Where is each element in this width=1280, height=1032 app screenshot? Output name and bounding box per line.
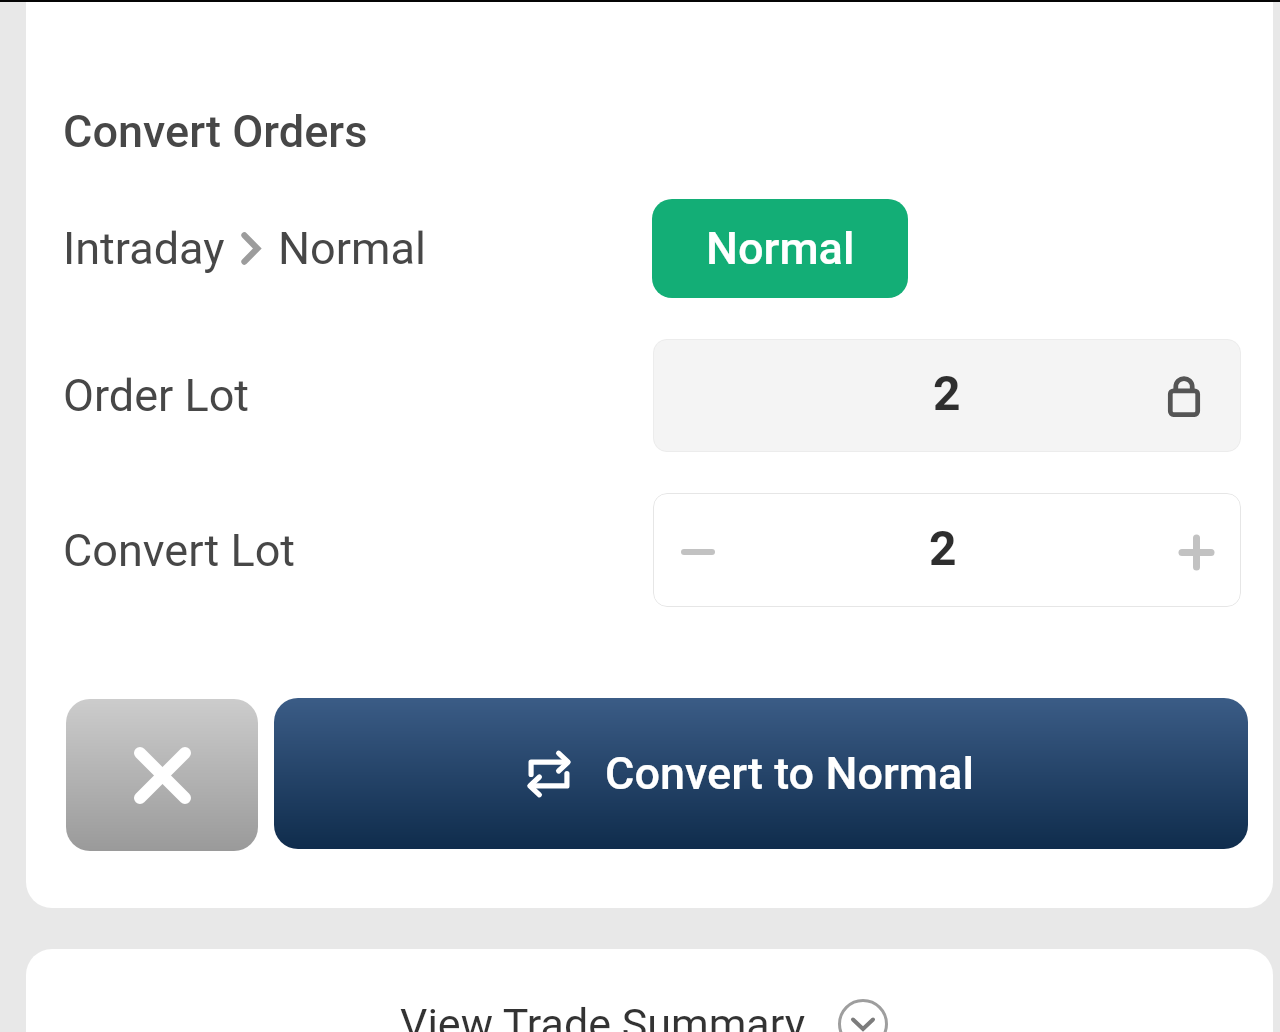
staticText: 2 bbox=[933, 365, 961, 421]
staticText: View Trade Summary bbox=[400, 999, 806, 1032]
staticText: Convert Lot bbox=[63, 524, 296, 577]
staticText: Intraday bbox=[63, 222, 225, 275]
staticText: Order Lot bbox=[63, 369, 250, 422]
button[interactable]: Convert to Normal bbox=[274, 698, 1248, 849]
staticText: Convert Orders bbox=[63, 105, 368, 158]
button[interactable]: View Trade Summary bbox=[26, 949, 1273, 1032]
staticText: Normal bbox=[706, 222, 855, 275]
staticText: Convert to Normal bbox=[605, 747, 974, 800]
button[interactable]: Increase bbox=[1156, 495, 1236, 607]
staticText: Normal bbox=[278, 222, 426, 275]
other: Locked bbox=[1163, 368, 1205, 410]
button[interactable]: Normal bbox=[652, 199, 908, 298]
button[interactable]: Cancel bbox=[66, 699, 258, 851]
button[interactable]: Decrease bbox=[658, 495, 738, 607]
staticText: 2 bbox=[929, 520, 957, 576]
